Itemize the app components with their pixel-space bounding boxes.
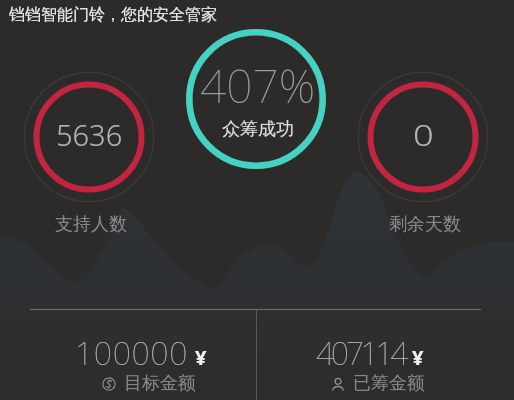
staticText: ¥	[195, 344, 207, 371]
staticText: ¥	[412, 344, 424, 371]
button[interactable]: 100000	[30, 330, 257, 400]
staticText: 目标金额	[124, 372, 196, 395]
button[interactable]: Days left	[357, 71, 489, 203]
staticText: 5636	[56, 115, 123, 154]
staticText: 407114	[316, 331, 406, 375]
staticText: 支持人数	[55, 213, 127, 236]
staticText: 铛铛智能门铃，您的安全管家	[9, 5, 217, 25]
button[interactable]: 407114	[261, 330, 485, 400]
staticText: 100000	[75, 331, 189, 375]
staticText: 0	[413, 115, 434, 154]
staticText: 剩余天数	[389, 213, 461, 236]
button[interactable]: Supporters	[23, 71, 155, 203]
button[interactable]: Funding progress 407 percent	[184, 27, 328, 171]
staticText: 已筹金额	[353, 372, 425, 395]
staticText: 众筹成功	[222, 118, 294, 141]
staticText: 407%	[200, 54, 316, 117]
